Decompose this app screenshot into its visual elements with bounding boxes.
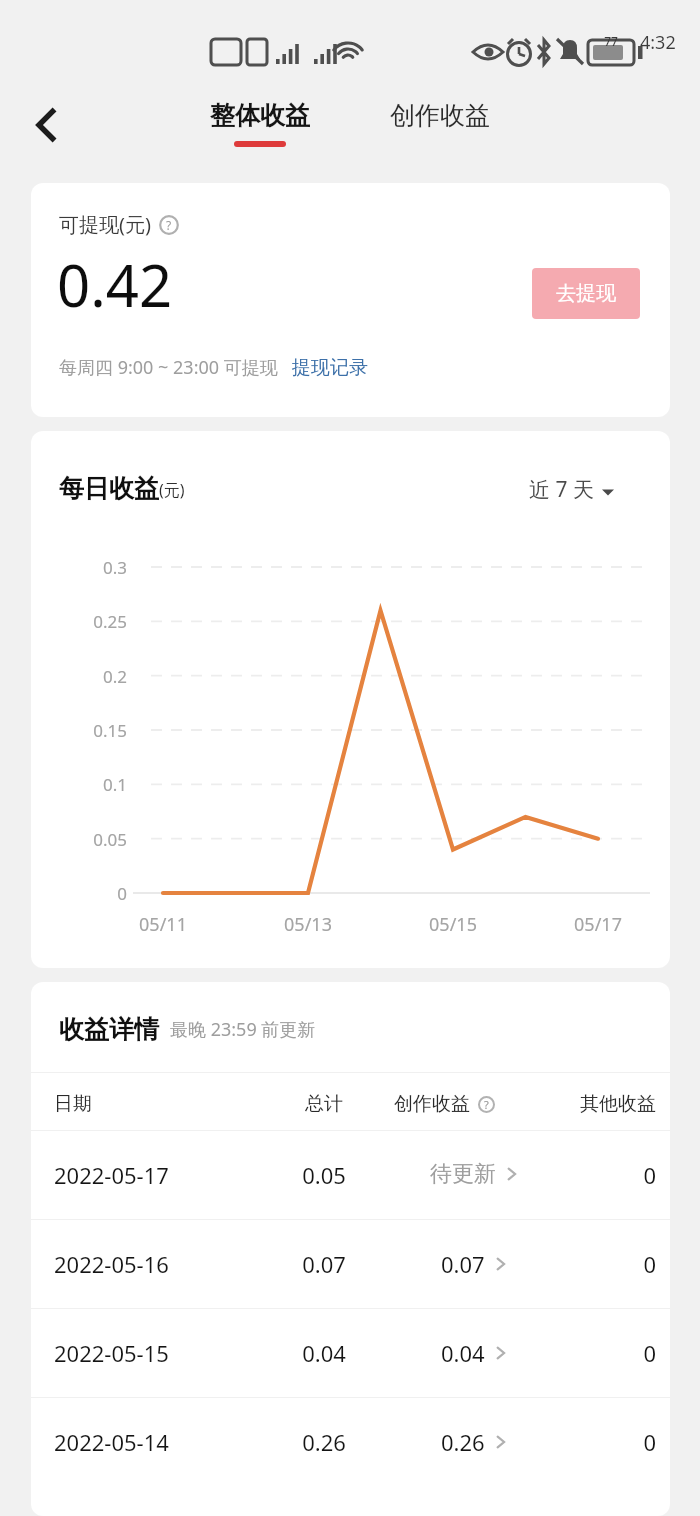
staticText: 0.04 <box>279 1338 369 1368</box>
staticText: 创作收益 <box>394 1092 470 1116</box>
staticText: 收益详情 <box>59 1014 159 1045</box>
staticText: ? <box>484 1097 489 1112</box>
button[interactable]: 2022-05-14 <box>31 1397 670 1486</box>
staticText: 0.42 <box>57 245 173 324</box>
staticText: 05/11 <box>118 912 208 937</box>
button[interactable]: Help <box>158 214 179 235</box>
staticText: 2022-05-16 <box>54 1249 169 1279</box>
staticText: 0.26 <box>441 1427 485 1457</box>
staticText: 2022-05-17 <box>54 1160 169 1190</box>
staticText: 2022-05-15 <box>54 1338 169 1368</box>
staticText: 05/13 <box>263 912 353 937</box>
staticText: 05/17 <box>553 912 643 937</box>
staticText: 0.2 <box>49 665 127 688</box>
staticText: 整体收益 <box>176 100 344 131</box>
staticText: 0.04 <box>441 1338 485 1368</box>
button[interactable]: 去提现 <box>532 268 640 319</box>
staticText: 创作收益 <box>356 100 524 131</box>
button[interactable]: 近 7 天 <box>529 475 614 504</box>
staticText: 0 <box>481 1427 656 1457</box>
staticText: 0 <box>481 1338 656 1368</box>
button[interactable]: 创作收益 <box>356 100 524 131</box>
button[interactable]: Back <box>16 94 78 156</box>
staticText: 0.1 <box>49 773 127 796</box>
staticText: 0.07 <box>279 1249 369 1279</box>
staticText: 0.3 <box>49 556 127 579</box>
staticText: 其他收益 <box>481 1092 656 1116</box>
staticText: 0 <box>481 1160 656 1190</box>
staticText: 待更新 <box>430 1160 496 1188</box>
staticText: 提现记录 <box>292 356 368 380</box>
staticText: 0 <box>49 882 127 905</box>
staticText: 总计 <box>279 1092 369 1116</box>
staticText: 2022-05-14 <box>54 1427 169 1457</box>
staticText: 近 7 天 <box>529 475 594 504</box>
staticText: ? <box>166 217 172 233</box>
staticText: 0.25 <box>49 610 127 633</box>
button[interactable]: 2022-05-17 <box>31 1130 670 1219</box>
staticText: 0.05 <box>49 828 127 851</box>
staticText: 可提现(元) <box>59 211 151 238</box>
staticText: 0 <box>481 1249 656 1279</box>
button[interactable]: 2022-05-15 <box>31 1308 670 1397</box>
button[interactable]: 整体收益 <box>176 100 344 147</box>
staticText: 77 <box>595 33 627 49</box>
staticText: 去提现 <box>556 281 616 306</box>
staticText: (元) <box>159 479 185 501</box>
staticText: 日期 <box>54 1092 92 1116</box>
staticText: 每日收益 <box>59 473 159 504</box>
staticText: 0.26 <box>279 1427 369 1457</box>
staticText: 4:32 <box>640 30 676 55</box>
button[interactable]: 提现记录 <box>292 356 368 380</box>
staticText: 每周四 9:00 ~ 23:00 可提现 <box>59 355 278 380</box>
staticText: 05/15 <box>408 912 498 937</box>
button[interactable]: 2022-05-16 <box>31 1219 670 1308</box>
staticText: 0.07 <box>441 1249 485 1279</box>
staticText: 0.05 <box>279 1160 369 1190</box>
staticText: 0.15 <box>49 719 127 742</box>
staticText: 最晚 23:59 前更新 <box>170 1017 316 1042</box>
